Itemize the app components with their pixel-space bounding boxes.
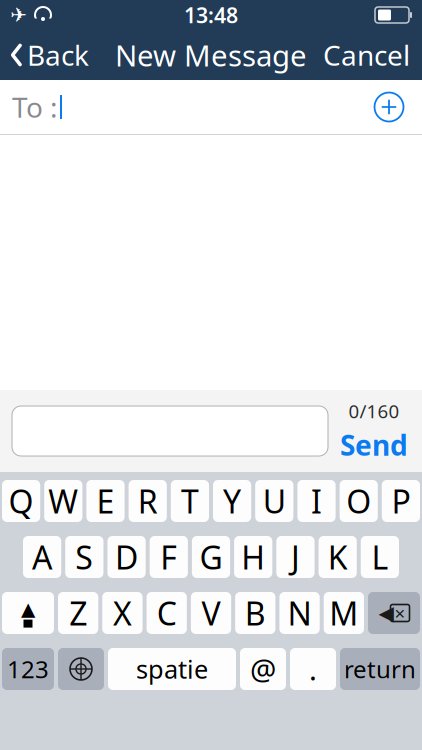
- staticText: S: [75, 536, 93, 578]
- button[interactable]: B: [235, 592, 275, 634]
- button[interactable]: A: [23, 536, 61, 578]
- button[interactable]: return: [340, 648, 420, 690]
- button[interactable]: .: [290, 648, 336, 690]
- button[interactable]: Shift: [2, 592, 54, 634]
- button[interactable]: Next keyboard: [58, 648, 104, 690]
- staticText: D: [115, 536, 138, 578]
- staticText: Z: [69, 592, 87, 634]
- button[interactable]: E: [86, 480, 125, 522]
- button[interactable]: Q: [2, 480, 40, 522]
- button[interactable]: X: [102, 592, 143, 634]
- staticText: B: [245, 592, 266, 634]
- button[interactable]: V: [191, 592, 231, 634]
- button[interactable]: @: [240, 648, 286, 690]
- staticText: E: [96, 480, 114, 522]
- button[interactable]: Z: [58, 592, 98, 634]
- staticText: M: [329, 592, 358, 634]
- button[interactable]: J: [276, 536, 314, 578]
- staticText: G: [199, 536, 222, 578]
- button[interactable]: G: [192, 536, 230, 578]
- staticText: F: [160, 536, 177, 578]
- button[interactable]: Message text field: [12, 406, 328, 456]
- staticText: 123: [7, 653, 49, 685]
- staticText: ×: [394, 601, 405, 625]
- button[interactable]: L: [361, 536, 399, 578]
- button[interactable]: Add recipient: [368, 90, 410, 124]
- staticText: To :: [12, 88, 58, 126]
- staticText: .: [309, 649, 317, 688]
- button[interactable]: H: [234, 536, 272, 578]
- button[interactable]: Y: [213, 480, 251, 522]
- staticText: X: [113, 592, 132, 634]
- button[interactable]: P: [382, 480, 420, 522]
- button[interactable]: O: [340, 480, 378, 522]
- staticText: A: [32, 536, 52, 578]
- staticText: Back: [27, 36, 89, 74]
- button[interactable]: Send: [340, 423, 408, 463]
- staticText: Send: [340, 426, 408, 463]
- button[interactable]: U: [255, 480, 293, 522]
- staticText: R: [138, 480, 158, 522]
- staticText: O: [346, 480, 371, 522]
- staticText: L: [371, 536, 388, 578]
- button[interactable]: spatie: [108, 648, 236, 690]
- button[interactable]: D: [107, 536, 146, 578]
- staticText: N: [288, 592, 312, 634]
- staticText: 0/160: [348, 398, 399, 423]
- staticText: New Message: [115, 35, 307, 74]
- staticText: @: [250, 649, 276, 688]
- staticText: I: [311, 480, 322, 522]
- button[interactable]: T: [171, 480, 209, 522]
- staticText: Y: [223, 480, 241, 522]
- staticText: return: [344, 653, 416, 685]
- button[interactable]: C: [147, 592, 187, 634]
- button[interactable]: Back: [0, 31, 99, 79]
- staticText: T: [181, 480, 199, 522]
- staticText: ▲: [21, 598, 35, 620]
- button[interactable]: I: [297, 480, 336, 522]
- button[interactable]: Cancel: [311, 31, 422, 79]
- button[interactable]: R: [129, 480, 167, 522]
- staticText: ✈: [10, 4, 27, 26]
- button[interactable]: Delete: [368, 592, 420, 634]
- staticText: P: [391, 480, 410, 522]
- staticText: Cancel: [323, 36, 410, 74]
- staticText: W: [48, 480, 78, 522]
- staticText: Q: [9, 480, 34, 522]
- staticText: K: [328, 536, 348, 578]
- staticText: H: [241, 536, 265, 578]
- staticText: ◀: [378, 602, 393, 624]
- button[interactable]: S: [65, 536, 103, 578]
- button[interactable]: N: [279, 592, 320, 634]
- staticText: U: [263, 480, 286, 522]
- button[interactable]: W: [44, 480, 82, 522]
- staticText: J: [291, 536, 300, 578]
- staticText: V: [201, 592, 220, 634]
- staticText: spatie: [136, 652, 208, 686]
- button[interactable]: 123: [2, 648, 54, 690]
- button[interactable]: F: [150, 536, 188, 578]
- button[interactable]: M: [324, 592, 364, 634]
- button[interactable]: K: [319, 536, 357, 578]
- staticText: 13:48: [184, 1, 238, 29]
- staticText: C: [157, 592, 177, 634]
